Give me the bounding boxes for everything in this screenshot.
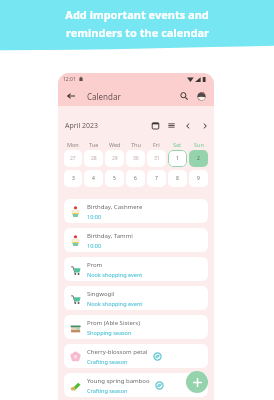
staticText: Birthday, Tammi xyxy=(87,232,133,240)
staticText: Calendar xyxy=(87,91,121,102)
button[interactable]: 3 xyxy=(64,170,82,187)
staticText: Sat xyxy=(173,141,182,148)
button[interactable]: Singwogil xyxy=(64,286,208,310)
staticText: Birthday, Cashmere xyxy=(87,203,143,211)
staticText: Nook shopping event xyxy=(87,300,143,307)
button[interactable]: Birthday, Tammi xyxy=(64,228,208,252)
staticText: April 2023 xyxy=(65,121,99,131)
staticText: 7 xyxy=(155,175,158,182)
button[interactable]: 7 xyxy=(147,170,166,187)
button[interactable]: 27 xyxy=(64,150,82,167)
staticText: Shopping season xyxy=(87,329,132,336)
button[interactable]: 31 xyxy=(147,150,166,167)
staticText: 28 xyxy=(91,155,97,162)
button[interactable]: Prom (Able Sisters) xyxy=(64,315,208,339)
button[interactable]: 2 xyxy=(189,150,208,167)
staticText: Mon xyxy=(67,141,79,148)
button[interactable]: Search xyxy=(177,89,191,103)
button[interactable]: Account xyxy=(194,89,208,103)
staticText: Nook shopping event xyxy=(87,271,143,278)
button[interactable]: Month view xyxy=(150,120,161,131)
button[interactable]: 6 xyxy=(126,170,145,187)
staticText: Add important events and xyxy=(65,7,209,22)
staticText: 4 xyxy=(92,175,95,182)
staticText: Prom xyxy=(87,261,103,269)
staticText: Tue xyxy=(89,141,99,148)
button[interactable]: Prom xyxy=(64,257,208,281)
button[interactable]: 28 xyxy=(84,150,103,167)
staticText: 27 xyxy=(70,155,76,162)
staticText: Young spring bamboo xyxy=(87,377,150,385)
button[interactable]: Agenda view xyxy=(166,120,177,131)
button[interactable]: Back xyxy=(64,89,78,103)
staticText: Sun xyxy=(194,141,204,148)
button[interactable]: 5 xyxy=(105,170,124,187)
staticText: 29 xyxy=(112,155,118,162)
staticText: 8 xyxy=(176,175,179,182)
staticText: 1 xyxy=(176,155,179,162)
staticText: 10:00 xyxy=(87,242,102,249)
button[interactable]: 4 xyxy=(84,170,103,187)
staticText: Prom (Able Sisters) xyxy=(87,319,141,327)
button[interactable]: 8 xyxy=(168,170,187,187)
staticText: 12:01 xyxy=(63,76,76,83)
staticText: 5 xyxy=(113,175,116,182)
staticText: Wed xyxy=(109,141,121,148)
staticText: 10:00 xyxy=(87,213,102,220)
staticText: Singwogil xyxy=(87,290,115,298)
button[interactable]: Young spring bamboo xyxy=(64,373,208,397)
button[interactable]: Previous month xyxy=(182,120,193,131)
staticText: 31 xyxy=(154,155,160,162)
staticText: 9 xyxy=(197,175,200,182)
staticText: Cherry-blossom petal xyxy=(87,348,148,356)
staticText: 2 xyxy=(197,155,200,162)
staticText: Crafting season xyxy=(87,387,128,394)
button[interactable]: 9 xyxy=(189,170,208,187)
staticText: 3 xyxy=(72,175,75,182)
staticText: Fri xyxy=(153,141,160,148)
staticText: Crafting season xyxy=(87,358,128,365)
button[interactable]: Cherry-blossom petal xyxy=(64,344,208,368)
staticText: 6 xyxy=(134,175,137,182)
button[interactable]: 30 xyxy=(126,150,145,167)
button[interactable]: Birthday, Cashmere xyxy=(64,199,208,223)
staticText: Thu xyxy=(131,141,141,148)
staticText: 30 xyxy=(133,155,139,162)
button[interactable]: 1 xyxy=(168,150,187,167)
staticText: reminders to the calendar xyxy=(66,25,209,40)
button[interactable]: 29 xyxy=(105,150,124,167)
button[interactable]: Add event xyxy=(186,371,208,393)
button[interactable]: Next month xyxy=(199,120,210,131)
